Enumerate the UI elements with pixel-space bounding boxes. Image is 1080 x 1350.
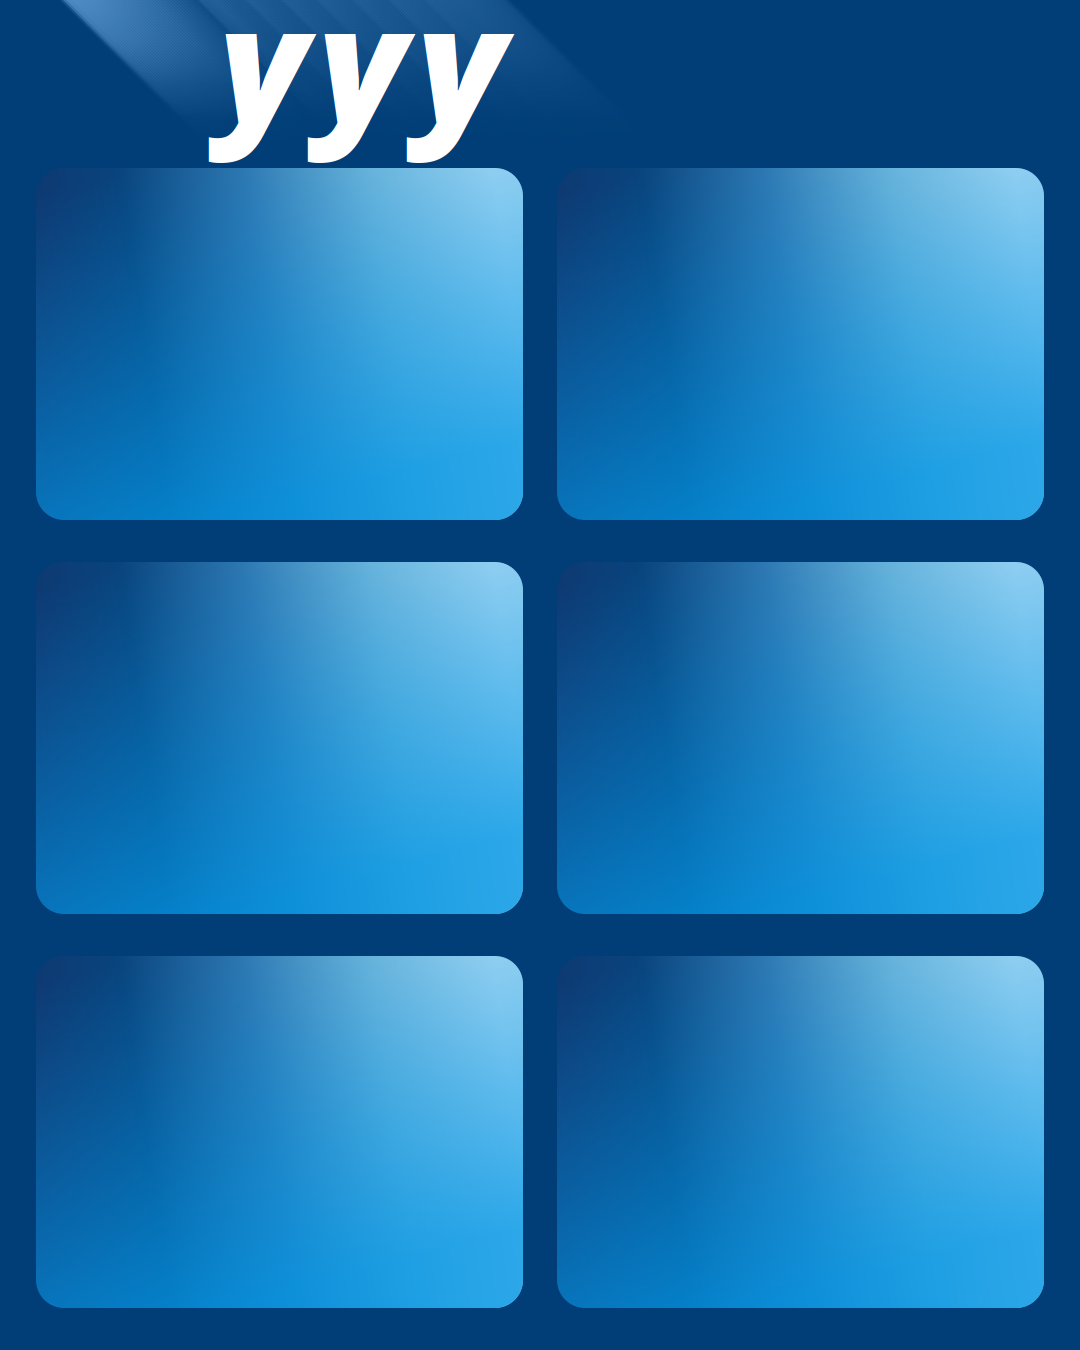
staticText: yyy	[219, 0, 505, 169]
button[interactable]: Tile	[36, 562, 523, 914]
button[interactable]: Tile	[557, 956, 1044, 1308]
button[interactable]: Tile	[557, 168, 1044, 520]
button[interactable]: Tile	[36, 168, 523, 520]
button[interactable]: Tile	[557, 562, 1044, 914]
button[interactable]: Tile	[36, 956, 523, 1308]
